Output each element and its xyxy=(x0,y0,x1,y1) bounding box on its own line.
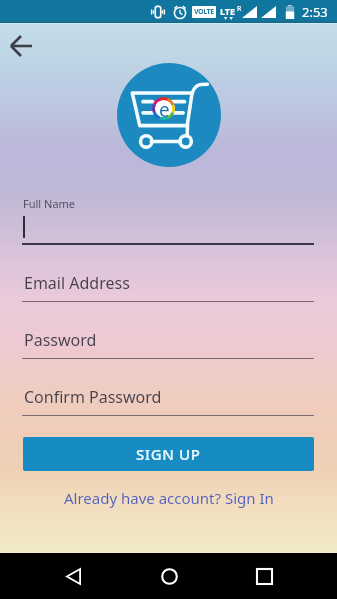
button[interactable]: Already have account? Sign In xyxy=(0,487,337,509)
button[interactable]: Email Address xyxy=(24,272,130,294)
button[interactable]: Home xyxy=(147,554,191,598)
button[interactable]: SIGN UP xyxy=(23,437,314,471)
staticText: Full Name xyxy=(23,196,76,211)
staticText: R xyxy=(237,4,242,14)
button[interactable]: Recents xyxy=(242,554,286,598)
button[interactable]: Back xyxy=(4,28,40,64)
button[interactable]: Confirm Password xyxy=(24,386,162,408)
staticText: VOLTE xyxy=(194,7,214,17)
staticText: e xyxy=(159,97,170,117)
button[interactable]: Back xyxy=(51,554,95,598)
staticText: 2:53 xyxy=(302,3,328,21)
staticText: SIGN UP xyxy=(136,444,201,464)
staticText: LTE xyxy=(220,5,236,17)
button[interactable]: Password xyxy=(24,329,97,351)
staticText: Already have account? Sign In xyxy=(64,488,274,508)
